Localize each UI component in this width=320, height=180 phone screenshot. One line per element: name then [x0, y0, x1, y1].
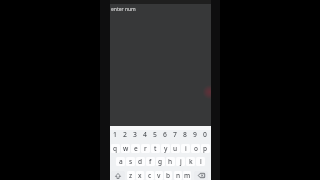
button[interactable]: e — [131, 144, 140, 153]
button[interactable]: d — [136, 157, 145, 166]
staticText: y — [164, 144, 168, 153]
button[interactable]: l — [196, 157, 205, 166]
button[interactable]: j — [176, 157, 185, 166]
staticText: 6 — [163, 130, 167, 139]
button[interactable]: 8 — [180, 130, 190, 139]
button[interactable]: x — [136, 171, 144, 180]
button[interactable]: f — [146, 157, 155, 166]
button[interactable]: u — [171, 144, 180, 153]
staticText: 7 — [173, 130, 177, 139]
button[interactable]: n — [174, 171, 182, 180]
staticText: 0 — [203, 130, 207, 139]
staticText: w — [123, 144, 129, 153]
staticText: z — [129, 171, 133, 180]
button[interactable]: t — [151, 144, 160, 153]
staticText: 2 — [123, 130, 127, 139]
button[interactable]: 3 — [130, 130, 140, 139]
staticText: c — [148, 171, 152, 180]
staticText: i — [185, 144, 187, 153]
button[interactable]: a — [116, 157, 125, 166]
button[interactable]: 1 — [110, 130, 120, 139]
staticText: f — [149, 157, 152, 166]
button[interactable]: 6 — [160, 130, 170, 139]
staticText: x — [138, 171, 142, 180]
button[interactable]: 2 — [120, 130, 130, 139]
staticText: n — [176, 171, 181, 180]
button[interactable]: m — [183, 171, 191, 180]
staticText: 5 — [153, 130, 157, 139]
button[interactable]: k — [186, 157, 195, 166]
staticText: t — [154, 144, 157, 153]
staticText: 4 — [143, 130, 147, 139]
staticText: m — [184, 171, 191, 180]
staticText: g — [158, 157, 163, 166]
button[interactable]: enter num — [111, 6, 136, 13]
button[interactable] — [111, 171, 125, 180]
staticText: s — [129, 157, 133, 166]
staticText: j — [180, 157, 182, 166]
staticText: 1 — [113, 130, 117, 139]
button[interactable]: v — [155, 171, 163, 180]
staticText: l — [200, 157, 202, 166]
button[interactable]: w — [121, 144, 130, 153]
staticText: p — [203, 144, 208, 153]
staticText: d — [138, 157, 143, 166]
staticText: enter num — [111, 6, 136, 13]
button[interactable]: 7 — [170, 130, 180, 139]
staticText: 8 — [183, 130, 187, 139]
staticText: k — [189, 157, 193, 166]
staticText: o — [194, 144, 198, 153]
button[interactable]: 0 — [200, 130, 210, 139]
staticText: r — [144, 144, 147, 153]
button[interactable]: c — [146, 171, 154, 180]
button[interactable]: h — [166, 157, 175, 166]
staticText: a — [119, 157, 123, 166]
button[interactable]: g — [156, 157, 165, 166]
button[interactable]: o — [191, 144, 200, 153]
button[interactable]: 5 — [150, 130, 160, 139]
button[interactable] — [194, 171, 208, 180]
staticText: 9 — [193, 130, 197, 139]
button[interactable]: z — [127, 171, 135, 180]
button[interactable]: q — [111, 144, 120, 153]
staticText: e — [134, 144, 138, 153]
staticText: u — [173, 144, 178, 153]
button[interactable]: y — [161, 144, 170, 153]
button[interactable]: b — [164, 171, 172, 180]
staticText: q — [113, 144, 118, 153]
staticText: b — [166, 171, 171, 180]
button[interactable]: s — [126, 157, 135, 166]
button[interactable]: p — [201, 144, 210, 153]
button[interactable]: r — [141, 144, 150, 153]
button[interactable]: 9 — [190, 130, 200, 139]
button[interactable]: 4 — [140, 130, 150, 139]
staticText: 3 — [133, 130, 137, 139]
staticText: h — [168, 157, 173, 166]
staticText: v — [157, 171, 161, 180]
button[interactable]: i — [181, 144, 190, 153]
